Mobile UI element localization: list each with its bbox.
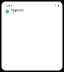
staticText: details	[10, 13, 14, 14]
staticText: Payment	[10, 9, 23, 12]
staticText: ıl ◗	[54, 4, 58, 7]
staticText: 9:41	[5, 4, 12, 7]
